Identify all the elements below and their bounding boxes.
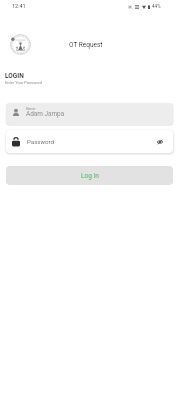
staticText: Log In — [81, 172, 99, 180]
staticText: Adam Jampa — [26, 110, 65, 118]
staticText: Enter Your Password — [5, 80, 43, 85]
staticText: Name — [26, 107, 36, 111]
staticText: LOGIN — [5, 72, 24, 80]
button[interactable]: Password — [6, 130, 173, 153]
staticText: Password — [27, 138, 54, 145]
button[interactable]: Toggle password visibility — [157, 139, 163, 145]
staticText: OT Request — [69, 41, 103, 49]
staticText: 12:41 — [12, 3, 26, 9]
button[interactable]: Log In — [6, 166, 173, 185]
staticText: 44% — [152, 4, 161, 9]
button[interactable]: Name — [6, 103, 173, 125]
